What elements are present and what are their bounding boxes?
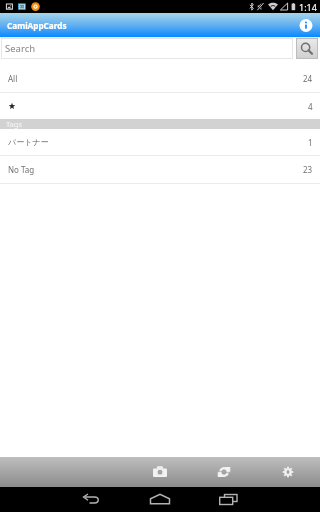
staticText: 1:14 [299,1,317,13]
staticText: 24 [303,73,313,84]
staticText: No Tag [8,164,35,175]
staticText: CamiAppCards [7,20,67,31]
button[interactable]: Search [296,38,318,59]
button[interactable]: Settings [256,457,320,487]
button[interactable]: Camera [128,457,192,487]
button[interactable]: 4 [0,93,320,119]
staticText: 1 [308,137,313,148]
button[interactable]: Home [138,487,182,512]
staticText: Search [5,42,36,55]
button[interactable]: Sync [192,457,256,487]
staticText: All [8,73,18,84]
button[interactable]: Info [292,13,320,37]
staticText: 4 [308,101,313,112]
staticText: Tags [6,119,22,129]
button[interactable]: Back [47,487,91,512]
button[interactable]: パートナー [0,129,320,155]
staticText: パートナー [8,137,49,147]
button[interactable]: Search [1,38,293,59]
button[interactable]: All [0,65,320,92]
button[interactable]: No Tag [0,156,320,183]
button[interactable]: Recents [229,487,273,512]
staticText: 23 [303,164,313,175]
